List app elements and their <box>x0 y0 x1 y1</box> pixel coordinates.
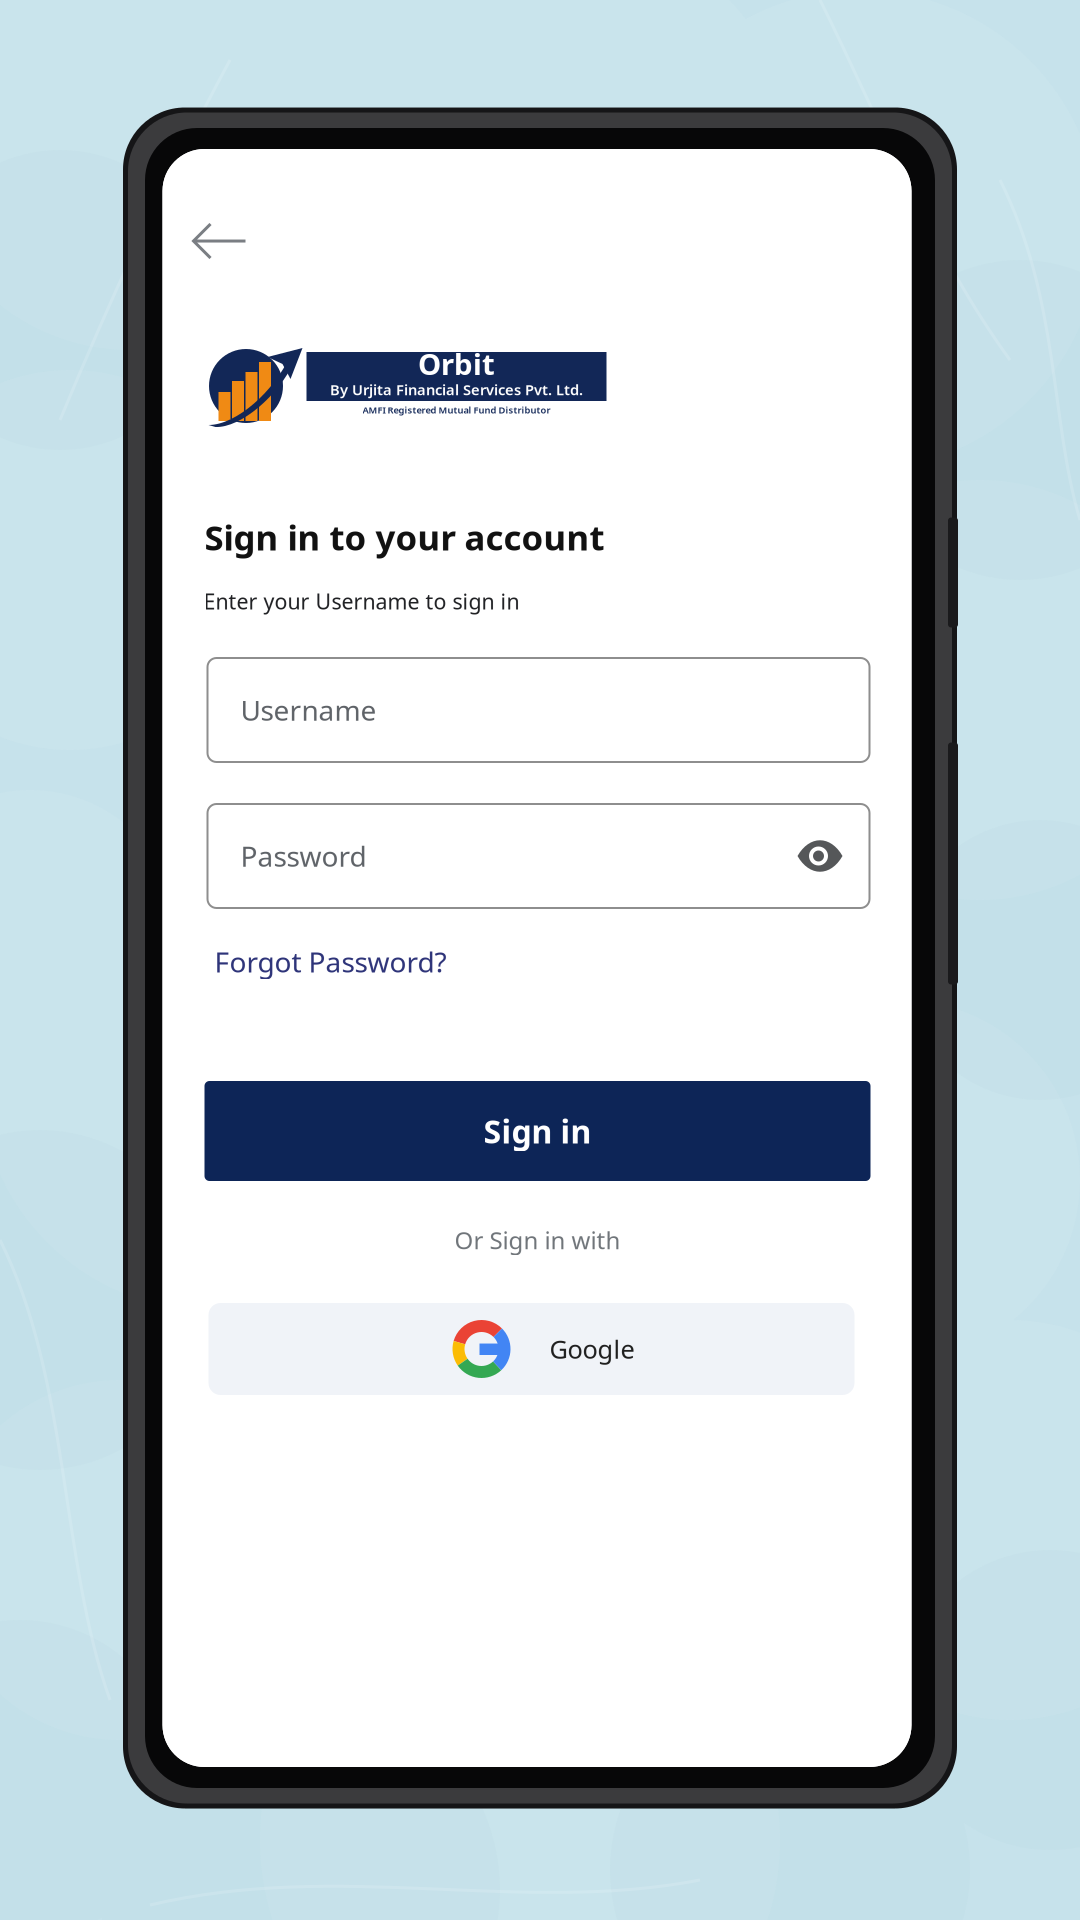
staticText: Username <box>240 691 376 729</box>
staticText: Password <box>240 837 366 875</box>
button[interactable]: Google <box>208 1303 854 1395</box>
staticText: Or Sign in with <box>454 1224 620 1256</box>
staticText: Orbit <box>418 344 495 383</box>
staticText: AMFI Registered Mutual Fund Distributor <box>362 404 550 416</box>
button[interactable]: Forgot Password? <box>210 935 456 988</box>
staticText: Sign in <box>483 1110 591 1152</box>
staticText: By Urjita Financial Services Pvt. Ltd. <box>330 380 583 399</box>
button[interactable]: Sign in <box>204 1081 870 1181</box>
button[interactable]: Show password <box>796 839 843 873</box>
staticText: Sign in to your account <box>204 514 604 560</box>
staticText: Enter your Username to sign in <box>203 587 519 615</box>
staticText: Forgot Password? <box>214 943 446 980</box>
button[interactable]: Back <box>191 223 287 302</box>
staticText: Google <box>549 1332 634 1366</box>
